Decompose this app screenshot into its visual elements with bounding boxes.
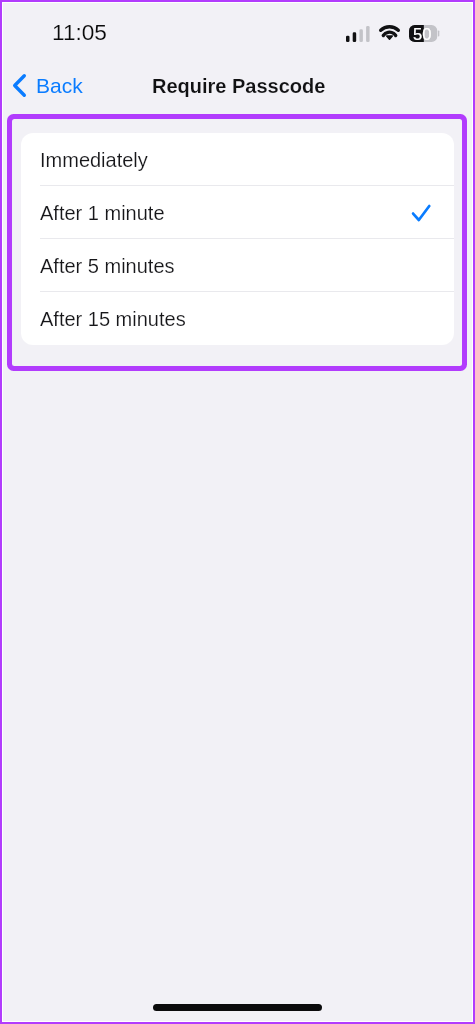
button[interactable]: After 15 minutes <box>21 292 454 345</box>
button[interactable]: Immediately <box>21 133 454 186</box>
staticText: Immediately <box>40 149 148 171</box>
staticText: 11:05 <box>52 20 107 45</box>
button[interactable]: Back <box>3 66 95 105</box>
staticText: 50 <box>413 25 432 42</box>
staticText: After 1 minute <box>40 202 165 224</box>
staticText: Require Passcode <box>152 75 326 97</box>
button[interactable]: After 1 minute <box>21 186 454 239</box>
staticText: After 5 minutes <box>40 255 175 277</box>
button[interactable]: After 5 minutes <box>21 239 454 292</box>
staticText: After 15 minutes <box>40 308 186 330</box>
staticText: Back <box>36 74 83 97</box>
